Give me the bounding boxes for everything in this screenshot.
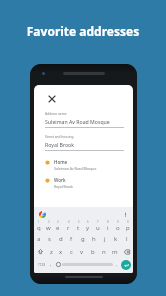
- button[interactable]: Street and housing: [45, 135, 124, 151]
- button[interactable]: Enter: [121, 260, 131, 270]
- button[interactable]: x: [56, 245, 66, 258]
- button[interactable]: Address name: [45, 112, 124, 128]
- staticText: b: [91, 248, 95, 256]
- staticText: Work: [54, 177, 66, 183]
- button[interactable]: a: [34, 232, 44, 245]
- staticText: 7: [97, 220, 99, 224]
- staticText: h: [92, 235, 96, 243]
- staticText: m: [112, 248, 118, 256]
- button[interactable]: Work: [45, 177, 124, 189]
- button[interactable]: n: [98, 245, 109, 258]
- staticText: 0: [127, 220, 129, 224]
- staticText: ?123: [38, 262, 46, 267]
- staticText: r: [67, 224, 70, 232]
- staticText: 9: [117, 220, 119, 224]
- staticText: 2: [48, 220, 50, 224]
- button[interactable]: 8: [103, 219, 113, 232]
- button[interactable]: s: [44, 232, 55, 245]
- staticText: Favorite addresses: [0, 23, 166, 39]
- button[interactable]: ?123: [36, 258, 47, 271]
- staticText: d: [59, 235, 63, 243]
- staticText: Suleiman Av Road Mosque: [45, 118, 110, 125]
- staticText: x: [59, 248, 63, 256]
- staticText: o: [116, 224, 120, 232]
- button[interactable]: ,: [47, 258, 54, 271]
- button[interactable]: 7: [93, 219, 103, 232]
- button[interactable]: Home: [45, 159, 124, 171]
- button[interactable]: 9: [113, 219, 123, 232]
- button[interactable]: Shift: [34, 245, 46, 258]
- staticText: t: [77, 224, 80, 232]
- staticText: Street and housing: [45, 135, 74, 139]
- button[interactable]: c: [66, 245, 76, 258]
- button[interactable]: l: [121, 232, 132, 245]
- button[interactable]: Backspace: [120, 245, 133, 258]
- staticText: n: [102, 248, 106, 256]
- staticText: l: [126, 235, 128, 243]
- button[interactable]: 2: [43, 219, 53, 232]
- staticText: i: [107, 224, 109, 232]
- staticText: p: [126, 224, 130, 232]
- button[interactable]: Close: [45, 92, 58, 105]
- button[interactable]: b: [87, 245, 98, 258]
- staticText: f: [70, 235, 73, 243]
- staticText: a: [37, 235, 41, 243]
- staticText: 1: [38, 220, 40, 224]
- button[interactable]: 1: [34, 219, 43, 232]
- button[interactable]: .: [113, 258, 121, 271]
- staticText: k: [114, 235, 118, 243]
- staticText: Home: [54, 159, 68, 165]
- staticText: Royal Brook: [45, 141, 74, 148]
- button[interactable]: 3: [53, 219, 63, 232]
- button[interactable]: v: [76, 245, 87, 258]
- staticText: u: [96, 224, 100, 232]
- button[interactable]: m: [109, 245, 120, 258]
- button[interactable]: Emoji: [54, 258, 62, 271]
- staticText: j: [104, 235, 106, 243]
- button[interactable]: 0: [123, 219, 133, 232]
- staticText: y: [86, 224, 90, 232]
- staticText: z: [50, 248, 53, 256]
- staticText: s: [48, 235, 51, 243]
- staticText: 8: [107, 220, 109, 224]
- staticText: w: [46, 224, 51, 232]
- button[interactable]: z: [46, 245, 56, 258]
- button[interactable]: d: [55, 232, 66, 245]
- button[interactable]: More options: [121, 210, 129, 218]
- button[interactable]: Google: [38, 210, 46, 218]
- staticText: q: [37, 224, 41, 232]
- staticText: 3: [57, 220, 59, 224]
- button[interactable]: g: [77, 232, 88, 245]
- button[interactable]: 4: [63, 219, 73, 232]
- button[interactable]: h: [88, 232, 99, 245]
- staticText: g: [81, 235, 85, 243]
- staticText: 4: [68, 220, 70, 224]
- button[interactable]: k: [110, 232, 121, 245]
- button[interactable]: f: [66, 232, 77, 245]
- staticText: e: [56, 224, 60, 232]
- staticText: 6: [87, 220, 89, 224]
- staticText: v: [80, 248, 84, 256]
- staticText: Royal Brook: [54, 184, 73, 189]
- staticText: ,: [50, 261, 52, 268]
- button[interactable]: j: [99, 232, 110, 245]
- staticText: Suleiman Av Road Mosque: [54, 166, 97, 171]
- staticText: c: [70, 248, 73, 256]
- staticText: Address name: [45, 112, 67, 116]
- staticText: 5: [78, 220, 80, 224]
- button[interactable]: 5: [73, 219, 83, 232]
- staticText: .: [116, 261, 118, 268]
- button[interactable]: 6: [83, 219, 93, 232]
